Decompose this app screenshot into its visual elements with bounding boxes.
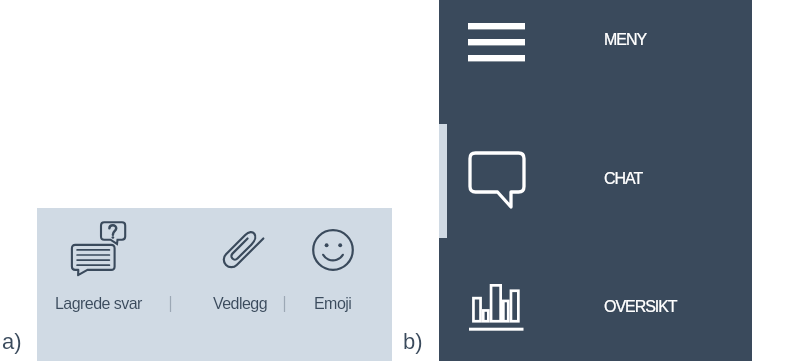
button[interactable]: Lagrede svar [49, 214, 159, 314]
staticText: Vedlegg [213, 295, 267, 313]
button[interactable]: Overview [439, 255, 752, 361]
staticText: b) [403, 329, 423, 354]
staticText: CHAT [604, 170, 643, 188]
button[interactable]: Emoji [299, 214, 373, 314]
button[interactable]: Vedlegg [197, 214, 275, 314]
staticText: a) [2, 329, 22, 354]
staticText: OVERSIKT [604, 298, 677, 316]
other: Chat [470, 153, 526, 210]
staticText: Lagrede svar [55, 295, 142, 313]
button[interactable]: Chat [439, 130, 752, 240]
other: Overview [469, 284, 524, 331]
staticText: Emoji [314, 295, 352, 313]
button[interactable]: Menu [439, 0, 752, 125]
staticText: MENY [604, 31, 647, 49]
other: Menu [468, 23, 525, 61]
